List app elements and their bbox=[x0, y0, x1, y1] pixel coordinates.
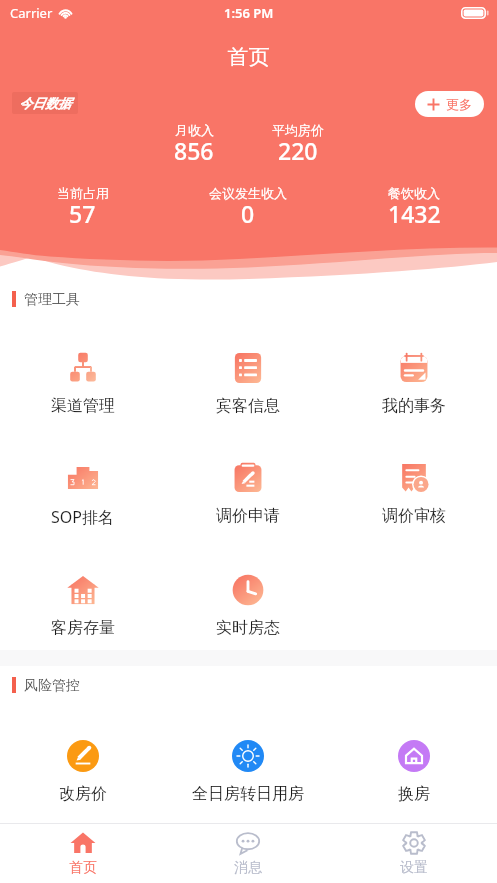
staticText: 平均房价 bbox=[272, 122, 324, 138]
staticText: 消息 bbox=[234, 859, 262, 877]
button[interactable]: 我的事务 bbox=[331, 352, 497, 416]
staticText: 设置 bbox=[400, 859, 428, 877]
staticText: 首页 bbox=[69, 859, 97, 877]
staticText: 风险管控 bbox=[24, 677, 80, 693]
button[interactable]: 宾客信息 bbox=[165, 352, 331, 416]
button[interactable]: 换房 bbox=[331, 740, 497, 804]
staticText: 1:56 PM bbox=[224, 4, 274, 22]
staticText: 宾客信息 bbox=[216, 396, 280, 416]
staticText: 0 bbox=[241, 198, 255, 229]
staticText: 月收入 bbox=[175, 122, 214, 138]
button[interactable]: 消息 bbox=[165, 824, 331, 883]
staticText: SOP排名 bbox=[51, 506, 114, 528]
button[interactable]: 全日房转日用房 bbox=[165, 740, 331, 804]
staticText: 今日数据 bbox=[19, 95, 71, 111]
staticText: 换房 bbox=[398, 784, 430, 804]
button[interactable]: 实时房态 bbox=[165, 574, 331, 638]
button[interactable]: 客房存量 bbox=[0, 574, 165, 638]
staticText: 我的事务 bbox=[382, 396, 446, 416]
button[interactable]: 更多 bbox=[415, 91, 484, 117]
button[interactable]: 今日数据 bbox=[12, 92, 78, 114]
staticText: 首页 bbox=[0, 44, 497, 70]
button[interactable]: 调价申请 bbox=[165, 462, 331, 526]
button[interactable]: 调价审核 bbox=[331, 462, 497, 526]
button[interactable]: 改房价 bbox=[0, 740, 165, 804]
staticText: 856 bbox=[174, 135, 214, 166]
staticText: 57 bbox=[69, 198, 96, 229]
staticText: 全日房转日用房 bbox=[192, 784, 304, 804]
staticText: 会议发生收入 bbox=[209, 185, 287, 201]
staticText: 调价审核 bbox=[382, 506, 446, 526]
staticText: 实时房态 bbox=[216, 618, 280, 638]
staticText: 当前占用 bbox=[57, 185, 109, 201]
staticText: 1432 bbox=[388, 198, 441, 229]
button[interactable]: 渠道管理 bbox=[0, 352, 165, 416]
button[interactable]: SOP排名 bbox=[0, 462, 165, 528]
staticText: 渠道管理 bbox=[51, 396, 115, 416]
staticText: 管理工具 bbox=[24, 291, 80, 307]
button[interactable]: 设置 bbox=[331, 824, 497, 883]
staticText: 调价申请 bbox=[216, 506, 280, 526]
staticText: 改房价 bbox=[59, 784, 107, 804]
button[interactable]: 首页 bbox=[0, 824, 165, 883]
staticText: 220 bbox=[278, 135, 318, 166]
staticText: 餐饮收入 bbox=[388, 185, 440, 201]
staticText: 客房存量 bbox=[51, 618, 115, 638]
other: Battery bbox=[461, 7, 486, 19]
staticText: Carrier bbox=[10, 4, 53, 22]
staticText: 更多 bbox=[446, 96, 472, 112]
